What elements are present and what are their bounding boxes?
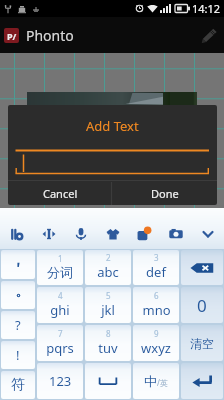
staticText: ! <box>16 346 20 364</box>
button[interactable]: Voice input <box>67 220 94 247</box>
staticText: abc <box>97 263 119 281</box>
button[interactable]: Theme <box>99 220 126 247</box>
button[interactable]: Enter <box>181 363 223 399</box>
staticText: Add Text <box>86 117 139 135</box>
button[interactable]: Space <box>85 363 131 399</box>
button[interactable]: 8 <box>85 325 131 361</box>
button[interactable]: ! <box>1 341 35 369</box>
button[interactable]: 1 <box>37 250 83 285</box>
staticText: 5 <box>106 290 111 301</box>
button[interactable]: Edit text <box>197 23 221 47</box>
button[interactable]: Camera <box>162 220 189 247</box>
button[interactable]: 9 <box>133 325 179 361</box>
staticText: jkl <box>101 301 115 319</box>
staticText: mno <box>142 301 171 319</box>
staticText: 4 <box>58 290 63 301</box>
staticText: 0 <box>197 294 207 317</box>
button[interactable]: Full stop <box>1 281 35 309</box>
button[interactable]: Comma <box>1 250 35 279</box>
staticText: wxyz <box>141 339 171 357</box>
staticText: 符 <box>11 376 25 394</box>
staticText: 6 <box>154 290 159 301</box>
staticText: 1 <box>58 253 63 264</box>
staticText: pqrs <box>46 339 74 357</box>
button[interactable]: 符 <box>1 371 35 399</box>
staticText: 123 <box>49 372 72 390</box>
staticText: Done <box>151 186 179 201</box>
staticText: tuv <box>98 339 118 357</box>
staticText: P/ <box>7 30 17 42</box>
staticText: 清空 <box>190 336 214 351</box>
button[interactable]: ? <box>1 311 35 339</box>
button[interactable]: 2 <box>85 250 131 285</box>
staticText: 7 <box>58 328 63 339</box>
button[interactable]: 4 <box>37 287 83 323</box>
button[interactable]: Hide keyboard <box>194 220 221 247</box>
staticText: 14:12 <box>192 1 221 16</box>
staticText: /英 <box>157 377 168 388</box>
button[interactable]: 5 <box>85 287 131 323</box>
button[interactable]: 6 <box>133 287 179 323</box>
staticText: Cancel <box>43 186 78 201</box>
staticText: Phonto <box>26 26 74 45</box>
button[interactable]: Done <box>112 181 217 205</box>
button[interactable]: Clipboard <box>3 220 30 247</box>
staticText: ghi <box>50 301 70 319</box>
staticText: ? <box>15 316 21 334</box>
staticText: 2 <box>106 252 111 263</box>
button[interactable]: 清空 <box>181 325 223 361</box>
button[interactable]: 中 <box>133 363 179 399</box>
button[interactable]: 3 <box>133 250 179 285</box>
staticText: 8 <box>106 328 111 339</box>
button[interactable]: 123 <box>37 363 83 399</box>
button[interactable]: 0 <box>181 287 223 323</box>
button[interactable]: Cancel <box>8 181 112 205</box>
button[interactable]: Backspace <box>181 250 223 285</box>
button[interactable]: 7 <box>37 325 83 361</box>
staticText: 中 <box>144 373 157 389</box>
staticText: 9 <box>154 328 159 339</box>
button[interactable]: Settings <box>130 220 157 247</box>
staticText: def <box>146 263 166 281</box>
button[interactable]: Move cursor <box>35 220 62 247</box>
staticText: 分词 <box>47 264 73 280</box>
staticText: 3 <box>154 252 159 263</box>
